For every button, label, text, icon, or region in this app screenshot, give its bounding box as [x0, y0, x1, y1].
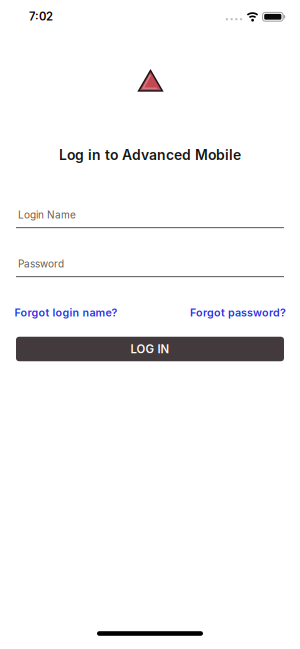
button[interactable]: LOG IN — [16, 337, 284, 361]
staticText: Forgot password? — [190, 306, 286, 319]
button[interactable]: Forgot login name? — [14, 306, 117, 319]
staticText: 7:02 — [29, 10, 53, 23]
button[interactable]: Forgot password? — [190, 306, 286, 319]
staticText: Forgot login name? — [14, 306, 117, 319]
staticText: Password — [18, 258, 64, 270]
button[interactable]: Login Name — [16, 209, 284, 228]
staticText: Log in to Advanced Mobile — [59, 147, 241, 163]
staticText: Login Name — [18, 209, 76, 221]
staticText: LOG IN — [130, 342, 169, 356]
button[interactable]: Password — [16, 258, 284, 277]
